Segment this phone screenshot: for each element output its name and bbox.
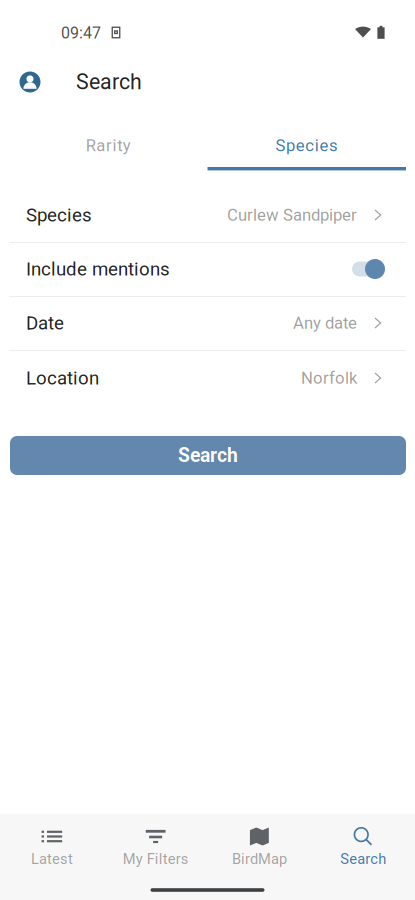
staticText: Species	[26, 204, 92, 226]
staticText: Norfolk	[301, 368, 357, 388]
staticText: 09:47	[61, 24, 101, 42]
staticText: Include mentions	[26, 258, 170, 280]
button[interactable]: My Filters	[104, 814, 208, 880]
staticText: My Filters	[123, 850, 189, 868]
button[interactable]: Location	[9, 350, 406, 406]
button[interactable]: Rarity	[9, 120, 207, 171]
button[interactable]: Date	[9, 296, 406, 350]
staticText: Search	[178, 444, 238, 467]
staticText: Search	[340, 850, 386, 868]
button[interactable]: Latest	[0, 814, 104, 880]
staticText: Rarity	[86, 136, 131, 155]
button[interactable]: Search	[311, 814, 415, 880]
button[interactable]: BirdMap	[207, 814, 311, 880]
staticText: Location	[26, 367, 99, 389]
button[interactable]: Species	[207, 120, 406, 171]
button[interactable]: Account	[9, 61, 51, 103]
button[interactable]: Search	[10, 436, 406, 475]
button[interactable]: Species	[9, 188, 406, 242]
staticText: Species	[275, 136, 338, 155]
staticText: Curlew Sandpiper	[227, 205, 357, 225]
staticText: Latest	[31, 850, 73, 868]
button[interactable]: Search	[76, 61, 142, 103]
staticText: Search	[76, 69, 142, 94]
staticText: Date	[26, 312, 64, 334]
staticText: BirdMap	[232, 850, 287, 868]
staticText: Any date	[293, 313, 357, 333]
button[interactable]: Include mentions	[9, 242, 406, 296]
